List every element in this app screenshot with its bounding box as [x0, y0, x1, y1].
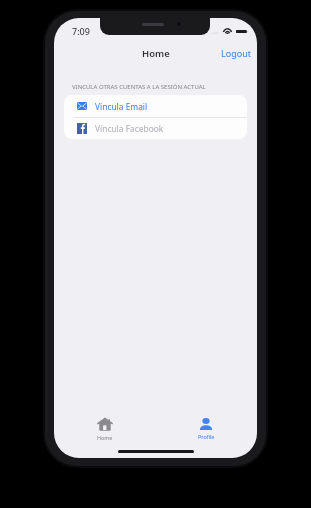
staticText: 7:09 [72, 25, 90, 37]
staticText: Vincula Facebook [95, 123, 164, 134]
staticText: Home [97, 434, 113, 441]
staticText: Home [142, 47, 170, 60]
button[interactable]: Logout [215, 44, 257, 62]
staticText: Profile [198, 433, 215, 440]
button[interactable]: Vincula Facebook [64, 118, 247, 139]
staticText: Logout [221, 47, 251, 59]
button[interactable]: Vincula Email [64, 95, 247, 117]
staticText: VINCULA OTRAS CUENTAS A LA SESIÓN ACTUAL [72, 83, 206, 91]
staticText: Vincula Email [95, 101, 148, 112]
button[interactable]: Home [54, 414, 155, 442]
button[interactable]: Profile [155, 414, 257, 442]
